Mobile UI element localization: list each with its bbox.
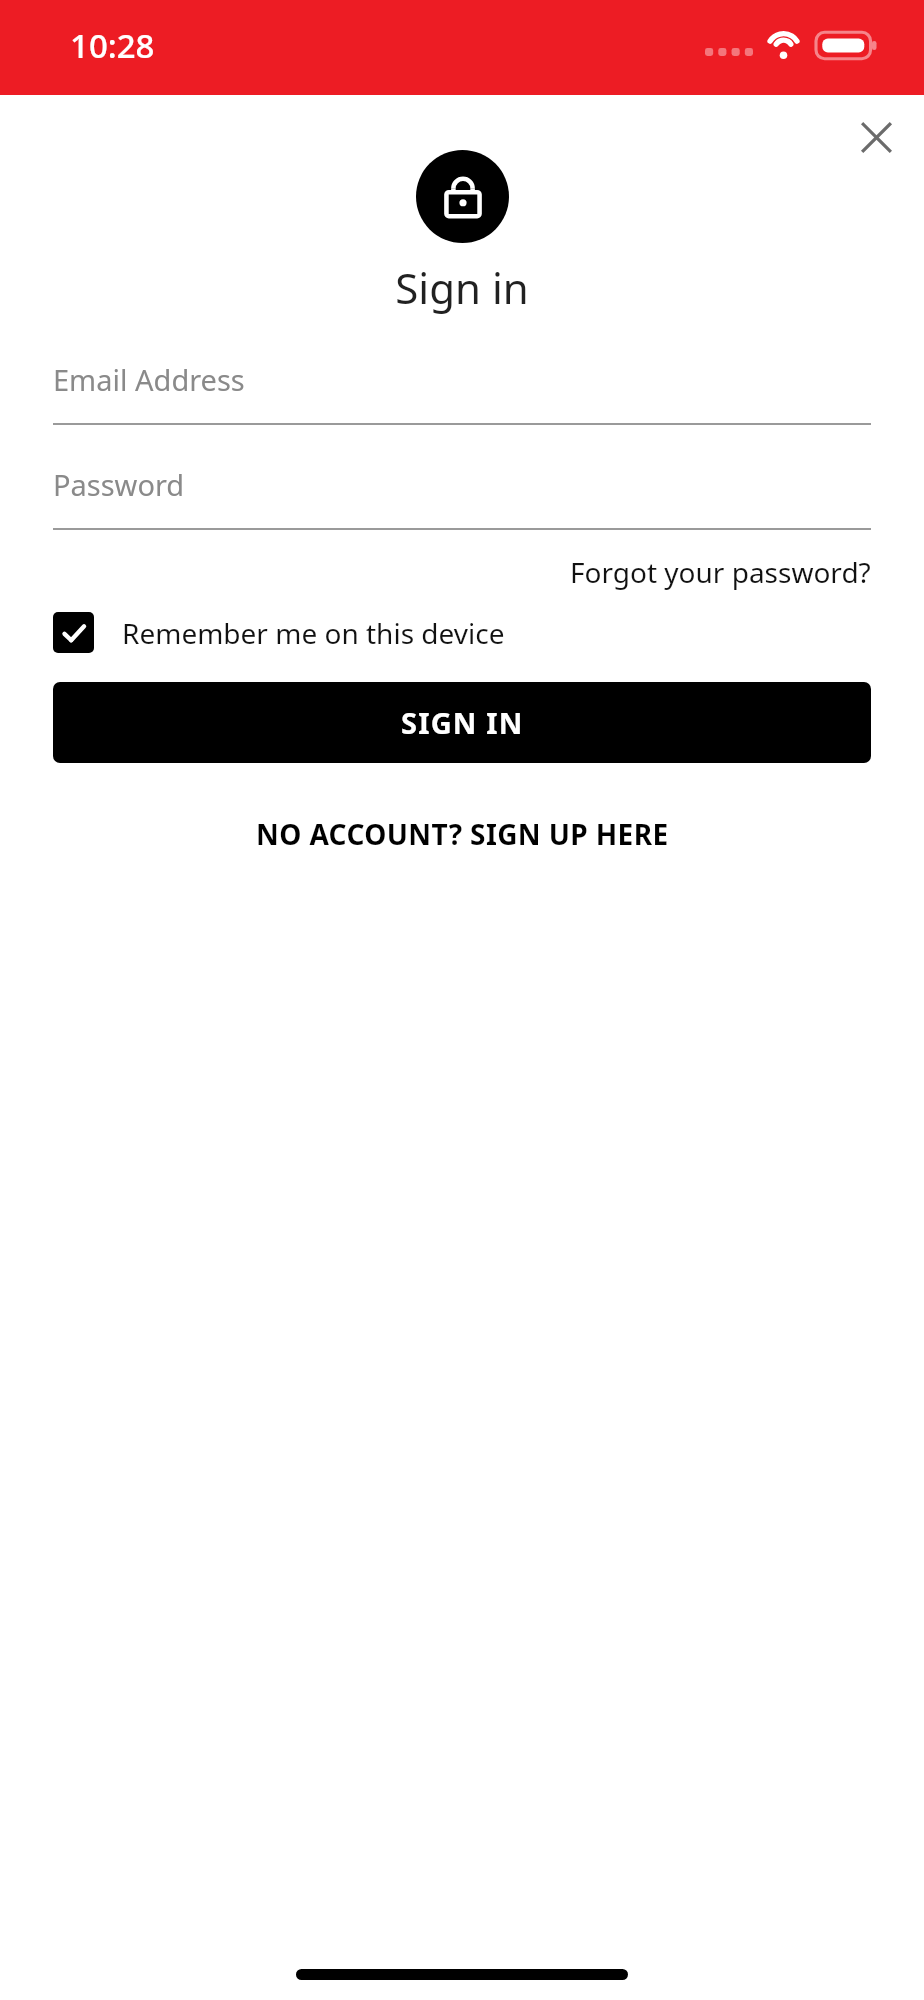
staticText: 10:28 xyxy=(70,23,155,68)
staticText: Sign in xyxy=(395,259,529,316)
staticText: SIGN IN xyxy=(401,703,524,742)
staticText: Remember me on this device xyxy=(122,614,505,652)
button[interactable]: Password xyxy=(53,459,871,530)
button[interactable]: Forgot your password? xyxy=(570,549,871,595)
button[interactable]: Email Address xyxy=(53,354,871,425)
staticText: Forgot your password? xyxy=(570,553,871,591)
staticText: NO ACCOUNT? SIGN UP HERE xyxy=(256,815,669,853)
button[interactable]: NO ACCOUNT? SIGN UP HERE xyxy=(236,807,689,861)
button[interactable]: Close xyxy=(848,109,904,165)
button[interactable]: SIGN IN xyxy=(53,682,871,763)
button[interactable]: Remember me on this device xyxy=(53,612,871,653)
staticText: Password xyxy=(53,465,185,504)
staticText: Email Address xyxy=(53,360,245,399)
